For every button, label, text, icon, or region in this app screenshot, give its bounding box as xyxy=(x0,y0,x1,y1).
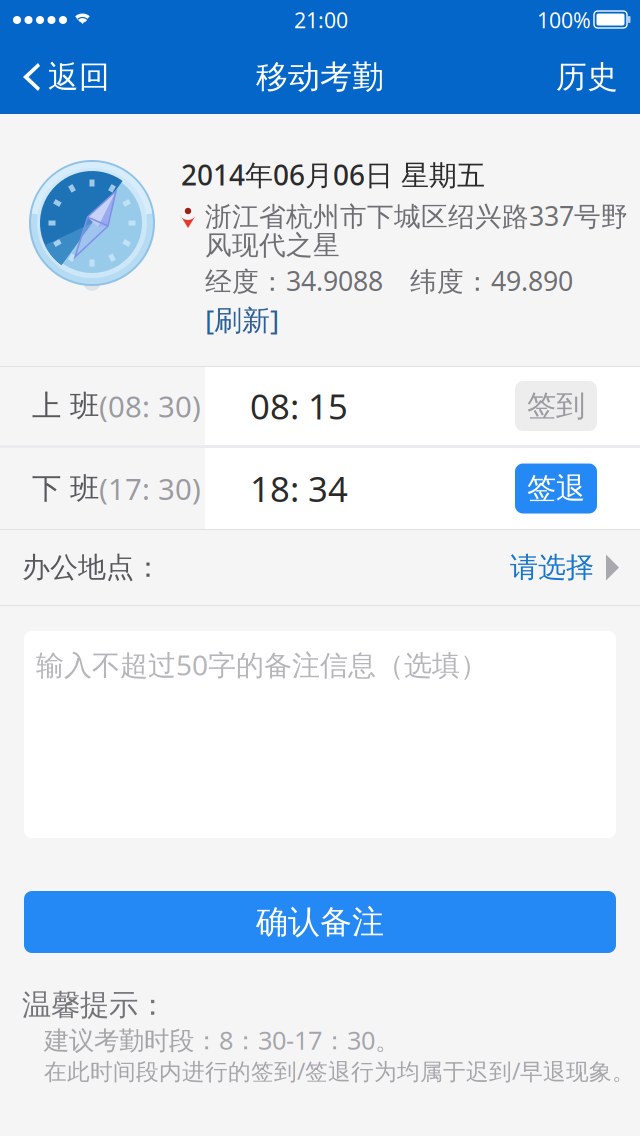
staticText: 确认备注 xyxy=(256,902,384,942)
staticText: 温馨提示： xyxy=(22,987,167,1023)
staticText: 输入不超过50字的备注信息（选填） xyxy=(36,646,488,683)
staticText: 08: 15 xyxy=(250,383,348,429)
button[interactable]: 签退 xyxy=(515,463,597,513)
staticText: (17: 30) xyxy=(99,469,201,508)
staticText: 2014年06月06日 星期五 xyxy=(181,156,485,193)
staticText: 18: 34 xyxy=(250,465,348,511)
staticText: 移动考勤 xyxy=(256,57,384,97)
staticText: 办公地点： xyxy=(22,550,162,585)
staticText: 签到 xyxy=(527,388,585,424)
staticText: (08: 30) xyxy=(99,386,201,425)
button[interactable]: [刷新] xyxy=(0,114,291,344)
staticText: 21:00 xyxy=(294,6,348,34)
staticText: 下 班 xyxy=(32,470,99,506)
staticText: 上 班 xyxy=(32,388,99,424)
button[interactable]: 办公地点： xyxy=(0,530,640,605)
staticText: 建议考勤时段：8：30-17：30。 xyxy=(44,1023,400,1057)
staticText: 100% xyxy=(537,6,591,34)
staticText: [刷新] xyxy=(205,301,279,338)
button[interactable]: 签到 xyxy=(515,381,597,431)
staticText: 历史 xyxy=(556,58,618,96)
staticText: 在此时间段内进行的签到/签退行为均属于迟到/早退现象。 xyxy=(44,1056,635,1086)
button[interactable]: 返回 xyxy=(0,40,126,114)
staticText: 风现代之星 xyxy=(205,229,340,262)
staticText: 返回 xyxy=(48,58,110,96)
staticText: 浙江省杭州市下城区绍兴路337号野 xyxy=(205,198,628,233)
staticText: 签退 xyxy=(527,470,585,506)
staticText: 请选择 xyxy=(510,550,594,585)
button[interactable]: 历史 xyxy=(538,40,640,114)
staticText: 经度：34.9088 纬度：49.890 xyxy=(205,263,573,298)
button[interactable]: 确认备注 xyxy=(24,891,616,953)
